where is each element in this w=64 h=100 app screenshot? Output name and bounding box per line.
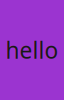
staticText: hello — [5, 35, 58, 65]
